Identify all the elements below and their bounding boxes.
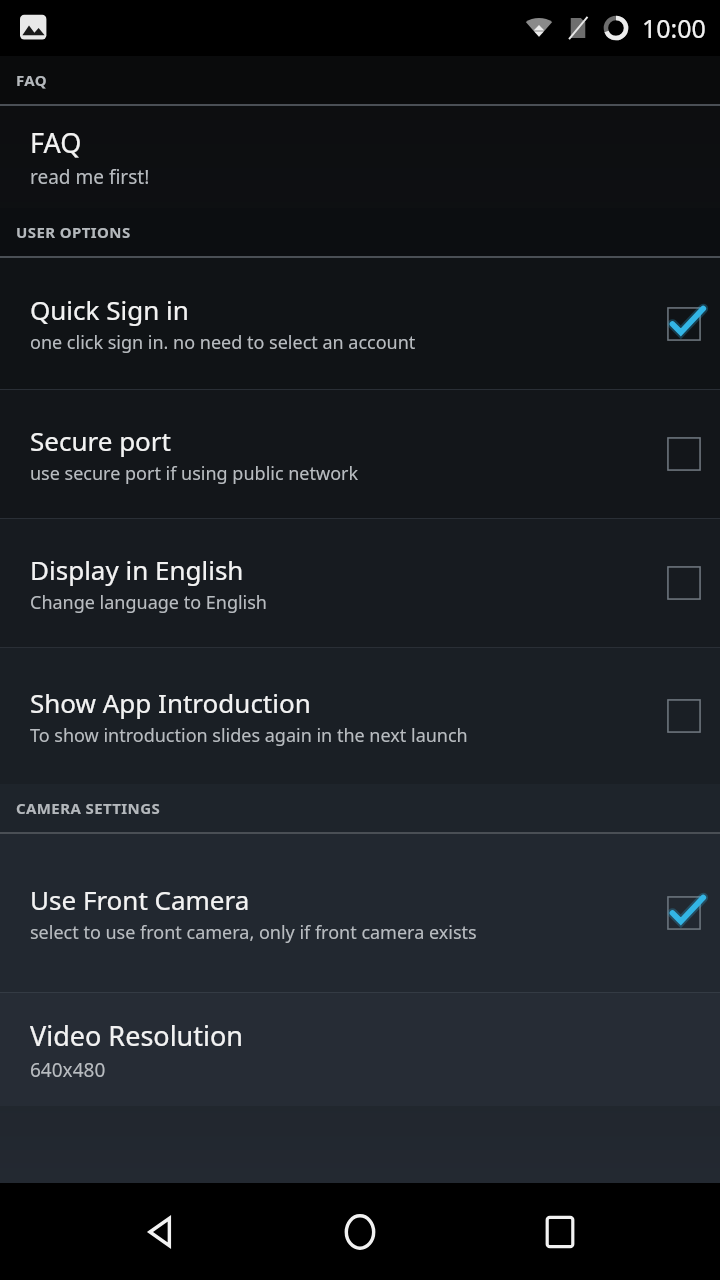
staticText: CAMERA SETTINGS [16,798,161,818]
staticText: FAQ [16,70,48,90]
staticText: Use Front Camera [30,882,250,917]
button[interactable]: Back [120,1192,200,1272]
button[interactable]: Secure port [0,390,720,518]
staticText: Change language to English [30,590,267,615]
staticText: select to use front camera, only if fron… [30,920,477,945]
button[interactable]: FAQ [0,106,720,208]
staticText: Quick Sign in [30,292,189,327]
button[interactable]: Display in English [662,561,706,605]
button[interactable]: Recent apps [520,1192,600,1272]
button[interactable]: Quick Sign in [0,258,720,389]
button[interactable]: Show App Introduction [0,648,720,784]
staticText: 10:00 [642,11,706,45]
staticText: Video Resolution [30,1017,244,1054]
button[interactable]: Home [320,1192,400,1272]
button[interactable]: Use Front Camera [662,891,706,935]
staticText: 640x480 [30,1057,106,1083]
staticText: USER OPTIONS [16,222,131,242]
staticText: FAQ [30,124,82,161]
staticText: To show introduction slides again in the… [30,723,468,748]
button[interactable]: Display in English [0,519,720,647]
staticText: Secure port [30,423,171,458]
button[interactable]: Quick Sign in [662,302,706,346]
button[interactable]: Use Front Camera [0,834,720,992]
button[interactable]: Show App Introduction [662,694,706,738]
staticText: one click sign in. no need to select an … [30,330,416,355]
staticText: read me first! [30,164,150,190]
staticText: Display in English [30,552,244,587]
button[interactable]: Video Resolution [0,993,720,1106]
staticText: use secure port if using public network [30,461,359,486]
staticText: Show App Introduction [30,685,311,720]
button[interactable]: Secure port [662,432,706,476]
